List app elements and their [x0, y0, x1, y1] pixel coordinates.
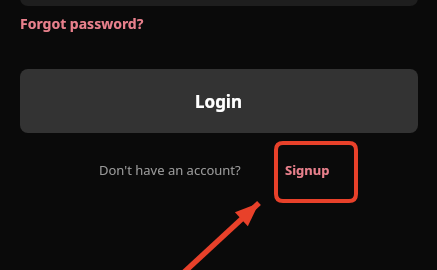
button[interactable]: Signup: [285, 161, 330, 179]
staticText: Login: [195, 90, 243, 113]
other: Signup highlighted: [276, 143, 356, 201]
staticText: Signup: [285, 161, 330, 179]
staticText: Don't have an account?: [99, 161, 241, 179]
button[interactable]: Forgot password?: [20, 14, 144, 33]
staticText: Forgot password?: [20, 14, 144, 33]
button[interactable]: Login: [20, 69, 418, 133]
